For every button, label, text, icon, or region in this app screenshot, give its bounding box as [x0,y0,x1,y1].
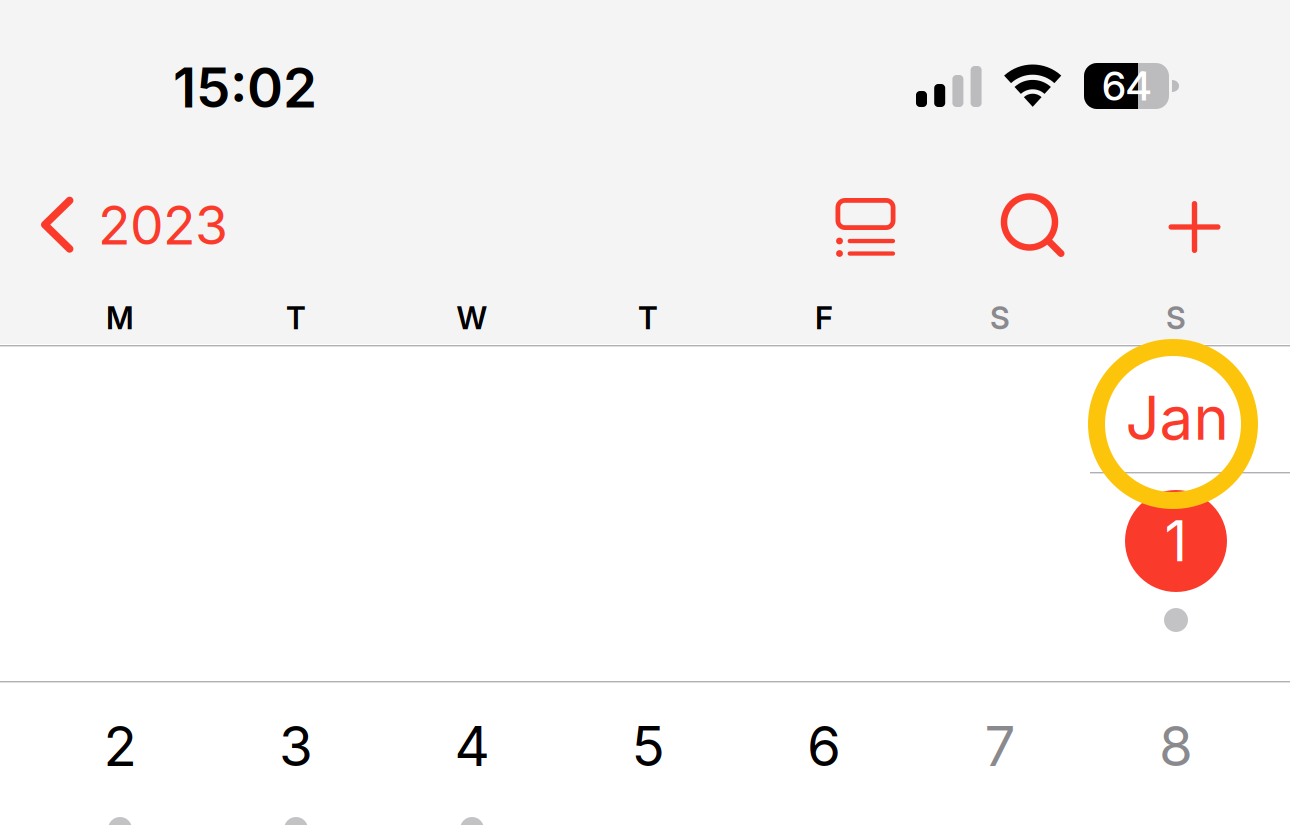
staticText: T [286,299,306,336]
button[interactable]: 4 [384,683,560,825]
button[interactable]: 8 [1088,683,1264,825]
staticText: M [106,299,134,336]
staticText: 15:02 [173,54,317,120]
button[interactable]: Search [984,178,1085,276]
staticText: 8 [1159,713,1193,779]
staticText: F [815,299,833,336]
staticText: S [1166,299,1186,336]
button[interactable]: New Event [1144,178,1245,276]
staticText: W [456,299,487,336]
staticText: S [990,299,1010,336]
button[interactable]: Inbox [815,178,916,276]
staticText: 7 [984,713,1015,779]
button[interactable]: 3 [208,683,384,825]
button[interactable]: 2023 [29,180,244,270]
staticText: 1 [1164,507,1187,575]
staticText: 2 [103,713,136,779]
staticText: T [638,299,658,336]
staticText: 2023 [98,193,228,257]
button[interactable]: 5 [560,683,736,825]
staticText: 5 [631,713,664,779]
staticText: 4 [454,713,489,779]
button[interactable]: 2 [32,683,208,825]
staticText: Jan [1125,382,1228,454]
button[interactable]: 6 [736,683,912,825]
staticText: 3 [279,713,313,779]
staticText: 6 [807,713,841,779]
button[interactable]: 1 [1088,474,1264,680]
button[interactable]: 7 [912,683,1088,825]
staticText: 64 [1102,62,1151,110]
